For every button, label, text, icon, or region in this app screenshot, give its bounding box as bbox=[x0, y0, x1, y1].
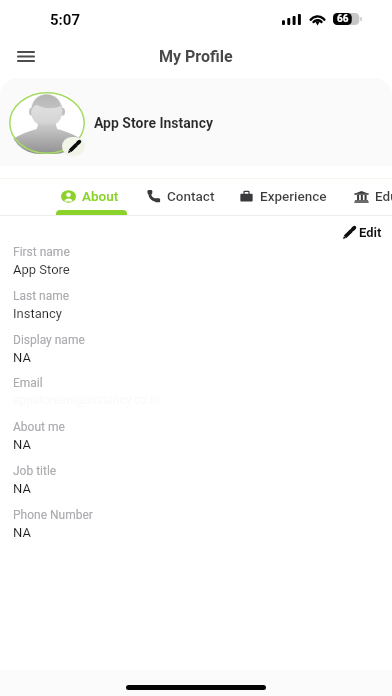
staticText: App Store bbox=[13, 262, 70, 277]
staticText: Edit bbox=[359, 225, 382, 240]
staticText: Last name bbox=[13, 289, 70, 303]
button[interactable]: Contact bbox=[138, 178, 220, 216]
staticText: NA bbox=[13, 525, 31, 540]
staticText: Instancy bbox=[13, 306, 62, 321]
staticText: Display name bbox=[13, 333, 85, 347]
button[interactable]: Menu bbox=[10, 42, 42, 70]
staticText: My Profile bbox=[159, 47, 233, 66]
staticText: 66 bbox=[337, 13, 349, 25]
staticText: About me bbox=[13, 420, 65, 434]
staticText: NA bbox=[13, 481, 31, 496]
staticText: App Store Instancy bbox=[94, 115, 213, 131]
staticText: Job title bbox=[13, 464, 57, 478]
staticText: Edu bbox=[375, 188, 392, 204]
staticText: Phone Number bbox=[13, 508, 93, 522]
button[interactable]: About bbox=[53, 178, 127, 216]
staticText: About bbox=[82, 188, 119, 204]
staticText: Experience bbox=[260, 188, 327, 204]
staticText: Contact bbox=[167, 188, 215, 204]
button[interactable]: Experience bbox=[231, 178, 333, 216]
staticText: Email bbox=[13, 376, 43, 390]
staticText: 5:07 bbox=[50, 11, 81, 29]
button[interactable]: Edu bbox=[346, 178, 392, 216]
button[interactable]: Edit bbox=[337, 219, 387, 246]
staticText: First name bbox=[13, 245, 70, 259]
staticText: NA bbox=[13, 437, 31, 452]
button[interactable]: Change profile photo bbox=[62, 137, 85, 156]
button[interactable]: Profile photo bbox=[9, 92, 85, 154]
staticText: NA bbox=[13, 350, 31, 365]
